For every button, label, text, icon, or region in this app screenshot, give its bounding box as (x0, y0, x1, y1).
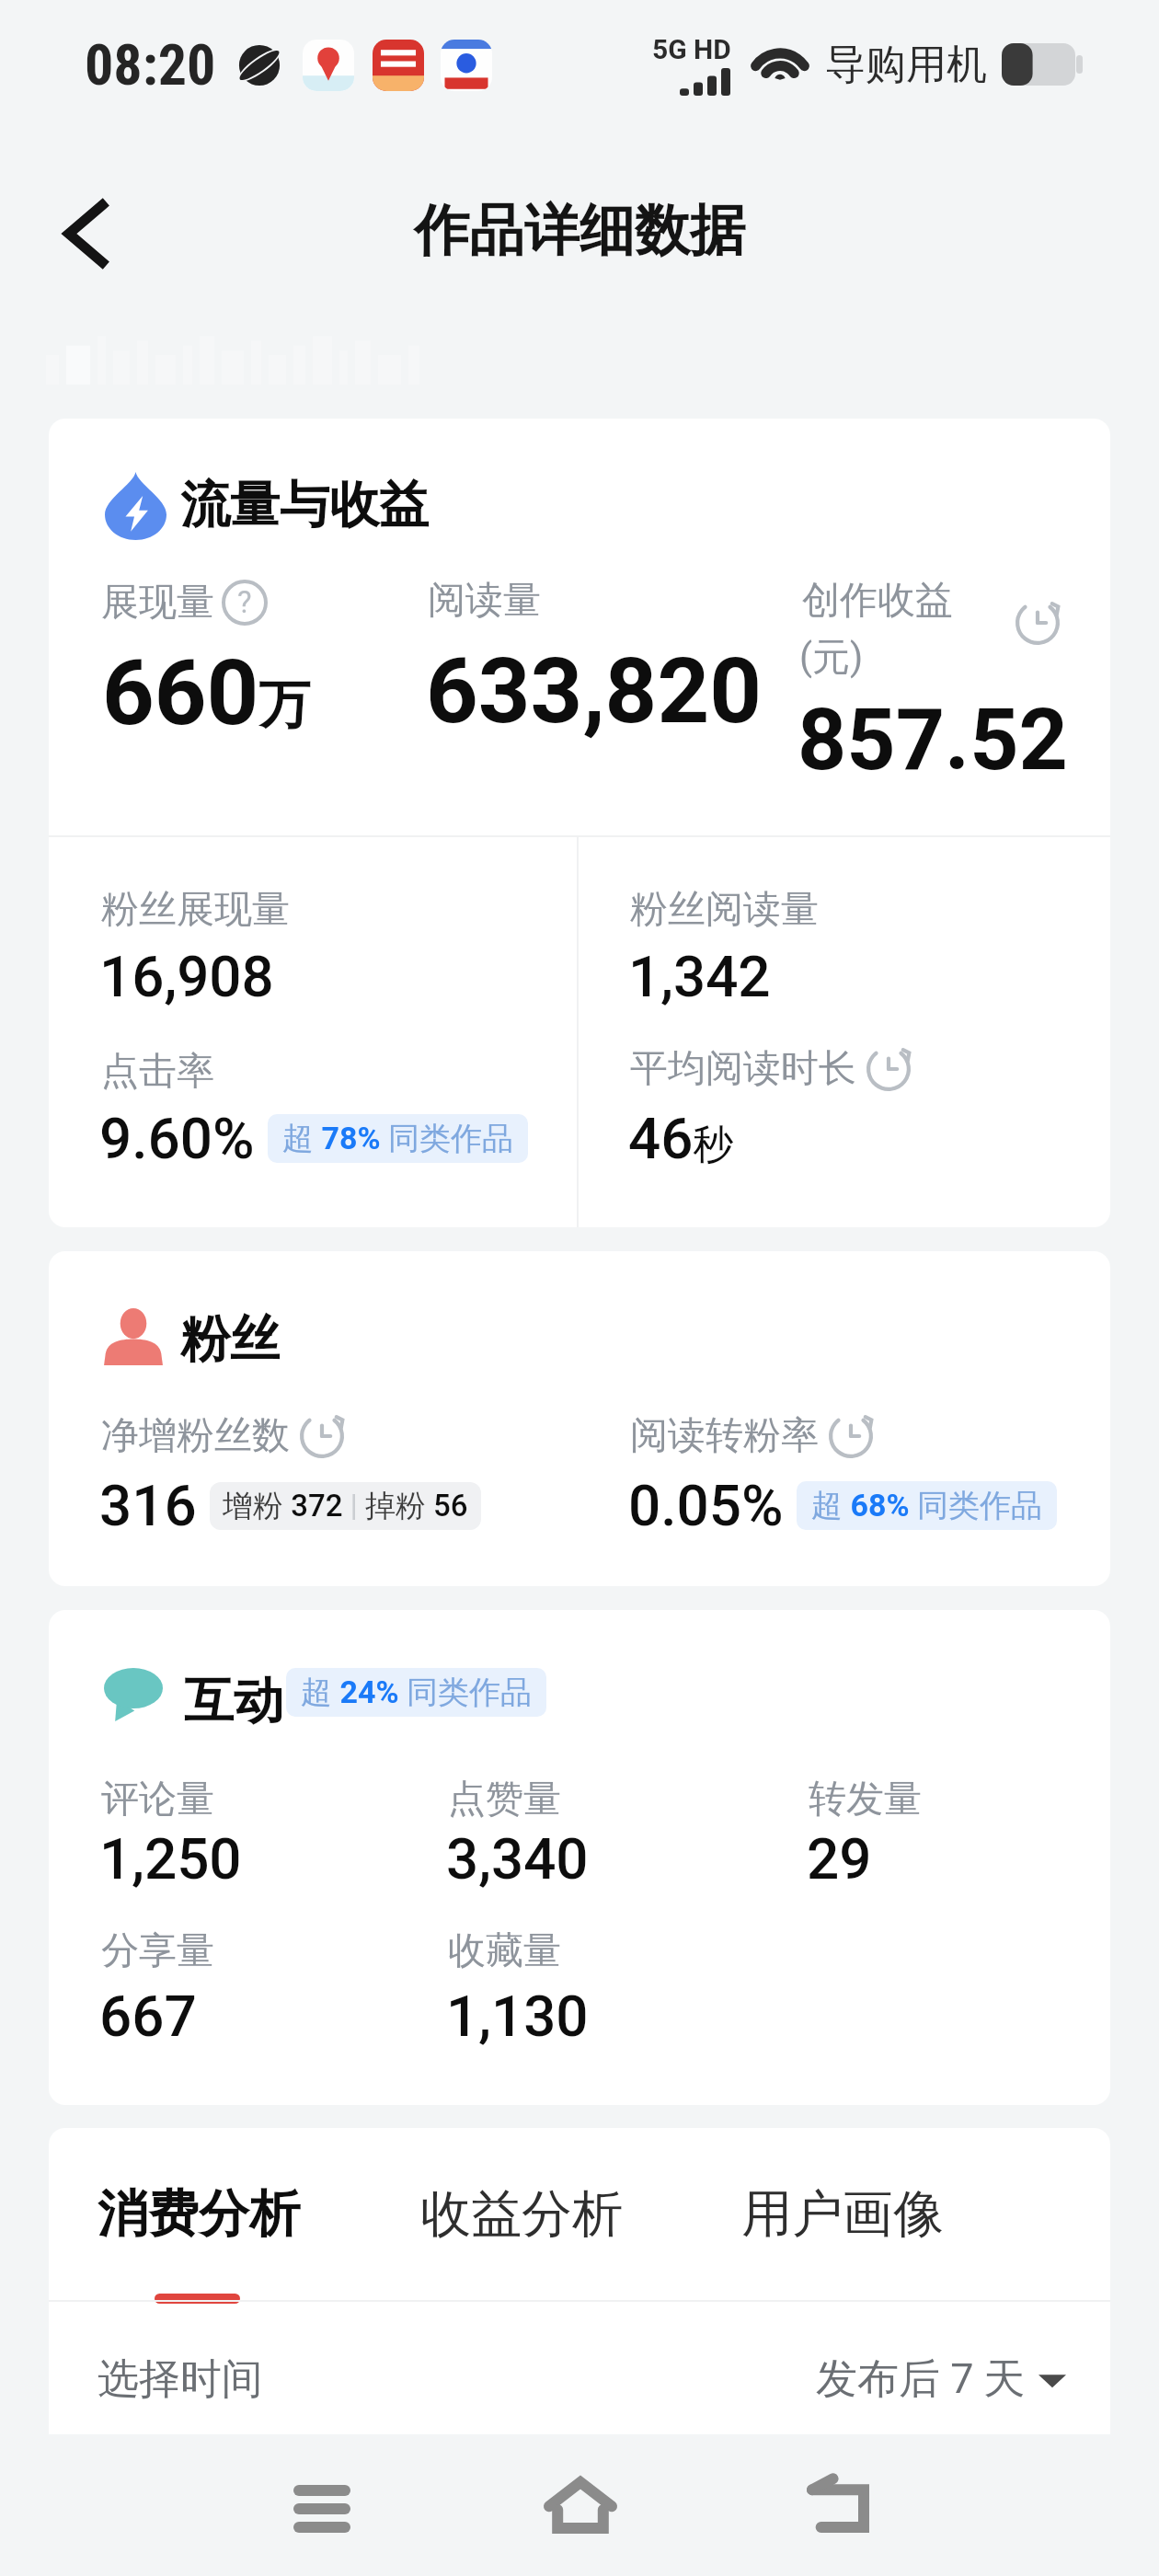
staticText: 667 (99, 1983, 197, 2050)
staticText: 超 78% 同类作品 (282, 1119, 513, 1158)
staticText: 16,908 (99, 943, 274, 1010)
button[interactable]: Home (544, 2477, 617, 2534)
staticText: 粉丝展现量 (101, 886, 290, 934)
staticText: 46秒 (628, 1105, 734, 1172)
staticText: 互动 (184, 1670, 283, 1732)
staticText: 0.05% (628, 1472, 784, 1539)
button[interactable]: 用户画像 (729, 2176, 958, 2259)
staticText: ? (237, 584, 252, 620)
staticText: 超 24% 同类作品 (301, 1673, 532, 1712)
staticText: 5G HD (652, 33, 731, 65)
staticText: 3,340 (446, 1825, 589, 1892)
staticText: 超 68% 同类作品 (811, 1486, 1042, 1525)
staticText: 29 (807, 1825, 872, 1892)
staticText: 633,820 (426, 638, 763, 744)
staticText: 收益分析 (420, 2182, 623, 2246)
staticText: 净增粉丝数 (101, 1412, 290, 1460)
button[interactable]: Recent apps (293, 2485, 350, 2533)
staticText: 创作收益 (802, 577, 953, 625)
staticText: 857.52 (798, 690, 1068, 790)
staticText: 展现量 (101, 579, 214, 627)
staticText: 评论量 (101, 1776, 214, 1823)
staticText: 点击率 (101, 1048, 214, 1096)
staticText: 9.60% (99, 1105, 255, 1172)
staticText: 阅读量 (428, 577, 541, 625)
button[interactable]: Back (35, 182, 138, 285)
staticText: 导购用机 (825, 40, 987, 90)
button[interactable]: 发布后 7 天 (798, 2335, 1084, 2424)
button[interactable]: Back (807, 2478, 869, 2533)
staticText: 1,130 (446, 1983, 589, 2050)
staticText: 粉丝 (180, 1308, 280, 1371)
staticText: 08:20 (85, 31, 216, 98)
staticText: 660万 (102, 639, 311, 746)
staticText: 点赞量 (448, 1776, 561, 1823)
staticText: 收藏量 (448, 1927, 561, 1975)
staticText: 平均阅读时长 (630, 1045, 856, 1093)
staticText: 粉丝阅读量 (630, 886, 819, 934)
staticText: 用户画像 (741, 2182, 944, 2246)
staticText: 1,250 (99, 1825, 242, 1892)
staticText: 1,342 (628, 943, 771, 1010)
staticText: 消费分析 (98, 2182, 300, 2246)
button[interactable]: 消费分析 (95, 2176, 302, 2305)
staticText: 选择时间 (98, 2353, 263, 2406)
staticText: 阅读转粉率 (630, 1412, 819, 1460)
staticText: 发布后 7 天 (816, 2353, 1026, 2406)
staticText: 分享量 (101, 1927, 214, 1975)
staticText: 增粉 372 | 掉粉 56 (223, 1487, 468, 1525)
button[interactable]: 收益分析 (407, 2176, 637, 2259)
staticText: (元) (799, 634, 864, 682)
staticText: 316 (99, 1472, 197, 1539)
staticText: 作品详细数据 (414, 196, 745, 266)
staticText: 流量与收益 (180, 474, 429, 536)
staticText: 转发量 (809, 1776, 922, 1823)
